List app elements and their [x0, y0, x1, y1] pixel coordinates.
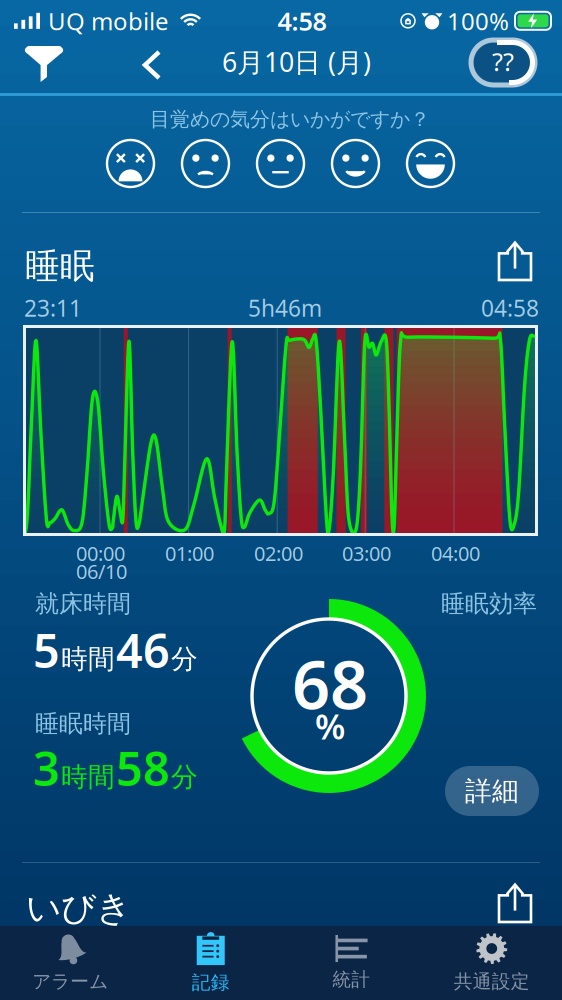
staticText: 5: [33, 619, 60, 681]
button[interactable]: 記録: [140, 926, 281, 1000]
staticText: 100%: [447, 5, 509, 37]
button[interactable]: Mood 4: [332, 140, 379, 187]
staticText: 23:11: [24, 293, 82, 323]
staticText: いびき: [26, 887, 131, 930]
button[interactable]: 共通設定: [421, 926, 562, 1000]
staticText: 04:00: [431, 540, 480, 567]
staticText: 詳細: [465, 775, 519, 807]
staticText: 睡眠効率: [441, 589, 537, 618]
staticText: 時間: [61, 761, 115, 794]
staticText: 02:00: [254, 540, 303, 567]
staticText: UQ mobile: [48, 5, 169, 37]
staticText: 46: [116, 619, 170, 681]
staticText: 4:58: [277, 4, 326, 38]
staticText: 記録: [192, 971, 230, 994]
staticText: ??: [492, 45, 514, 78]
button[interactable]: Share snore: [494, 880, 536, 926]
staticText: %: [315, 703, 345, 749]
staticText: 統計: [332, 968, 370, 991]
staticText: 睡眠: [25, 245, 95, 288]
button[interactable]: Mood 3: [257, 140, 304, 187]
button[interactable]: Mood 1: [107, 140, 154, 187]
button[interactable]: Share sleep: [494, 238, 536, 284]
staticText: 共通設定: [454, 970, 530, 993]
staticText: 睡眠時間: [35, 709, 131, 738]
staticText: アラーム: [32, 970, 108, 993]
staticText: 04:58: [481, 293, 539, 323]
staticText: 3: [33, 737, 60, 799]
staticText: 68: [292, 639, 368, 727]
staticText: 就床時間: [35, 589, 131, 618]
staticText: 00:00: [76, 540, 125, 567]
staticText: 分: [171, 643, 198, 676]
staticText: 5h46m: [248, 293, 322, 323]
button[interactable]: Back: [130, 45, 174, 85]
staticText: 目覚めの気分はいかがですか？: [150, 107, 430, 132]
staticText: 6月10日 (月): [222, 44, 371, 79]
button[interactable]: 統計: [281, 926, 421, 1000]
button[interactable]: Mood 5: [407, 140, 454, 187]
button[interactable]: アラーム: [0, 926, 140, 1000]
button[interactable]: Filter: [22, 44, 66, 84]
button[interactable]: Help: [471, 40, 535, 85]
button[interactable]: 詳細: [445, 766, 539, 816]
staticText: 01:00: [165, 540, 214, 567]
staticText: 06/10: [76, 558, 127, 585]
staticText: 時間: [61, 643, 115, 676]
staticText: 03:00: [342, 540, 391, 567]
button[interactable]: Mood 2: [182, 140, 229, 187]
staticText: 分: [171, 761, 198, 794]
staticText: 58: [116, 737, 170, 799]
